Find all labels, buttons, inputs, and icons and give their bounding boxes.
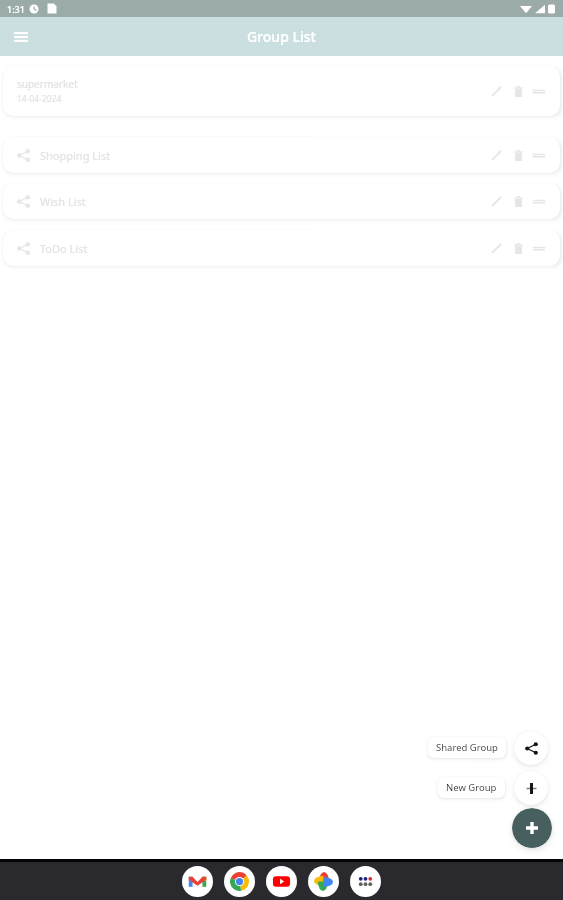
button[interactable]: Shopping List <box>3 137 560 173</box>
button[interactable]: ToDo List <box>3 230 560 266</box>
button[interactable]: Open navigation menu <box>4 20 37 53</box>
button[interactable]: Gmail <box>182 866 213 897</box>
button[interactable]: Chrome <box>224 866 255 897</box>
staticText: Shared Group <box>436 741 498 754</box>
button[interactable]: YouTube <box>266 866 297 897</box>
staticText: supermarket <box>17 77 78 91</box>
button[interactable]: Wish List <box>3 183 560 219</box>
staticText: Shopping List <box>40 148 111 163</box>
staticText: New Group <box>446 781 497 794</box>
button[interactable]: Add <box>512 808 552 848</box>
staticText: ToDo List <box>40 241 88 256</box>
button[interactable]: New Group <box>514 771 548 805</box>
button[interactable]: Photos <box>308 866 339 897</box>
staticText: 14-04-2024 <box>17 93 62 105</box>
staticText: 1:31 <box>7 3 25 15</box>
button[interactable]: Shared Group <box>428 737 506 758</box>
button[interactable]: Shared Group <box>514 731 548 765</box>
button[interactable]: All apps <box>350 866 381 897</box>
staticText: Group List <box>247 27 316 46</box>
button[interactable]: New Group <box>438 777 505 798</box>
staticText: Wish List <box>40 194 86 209</box>
